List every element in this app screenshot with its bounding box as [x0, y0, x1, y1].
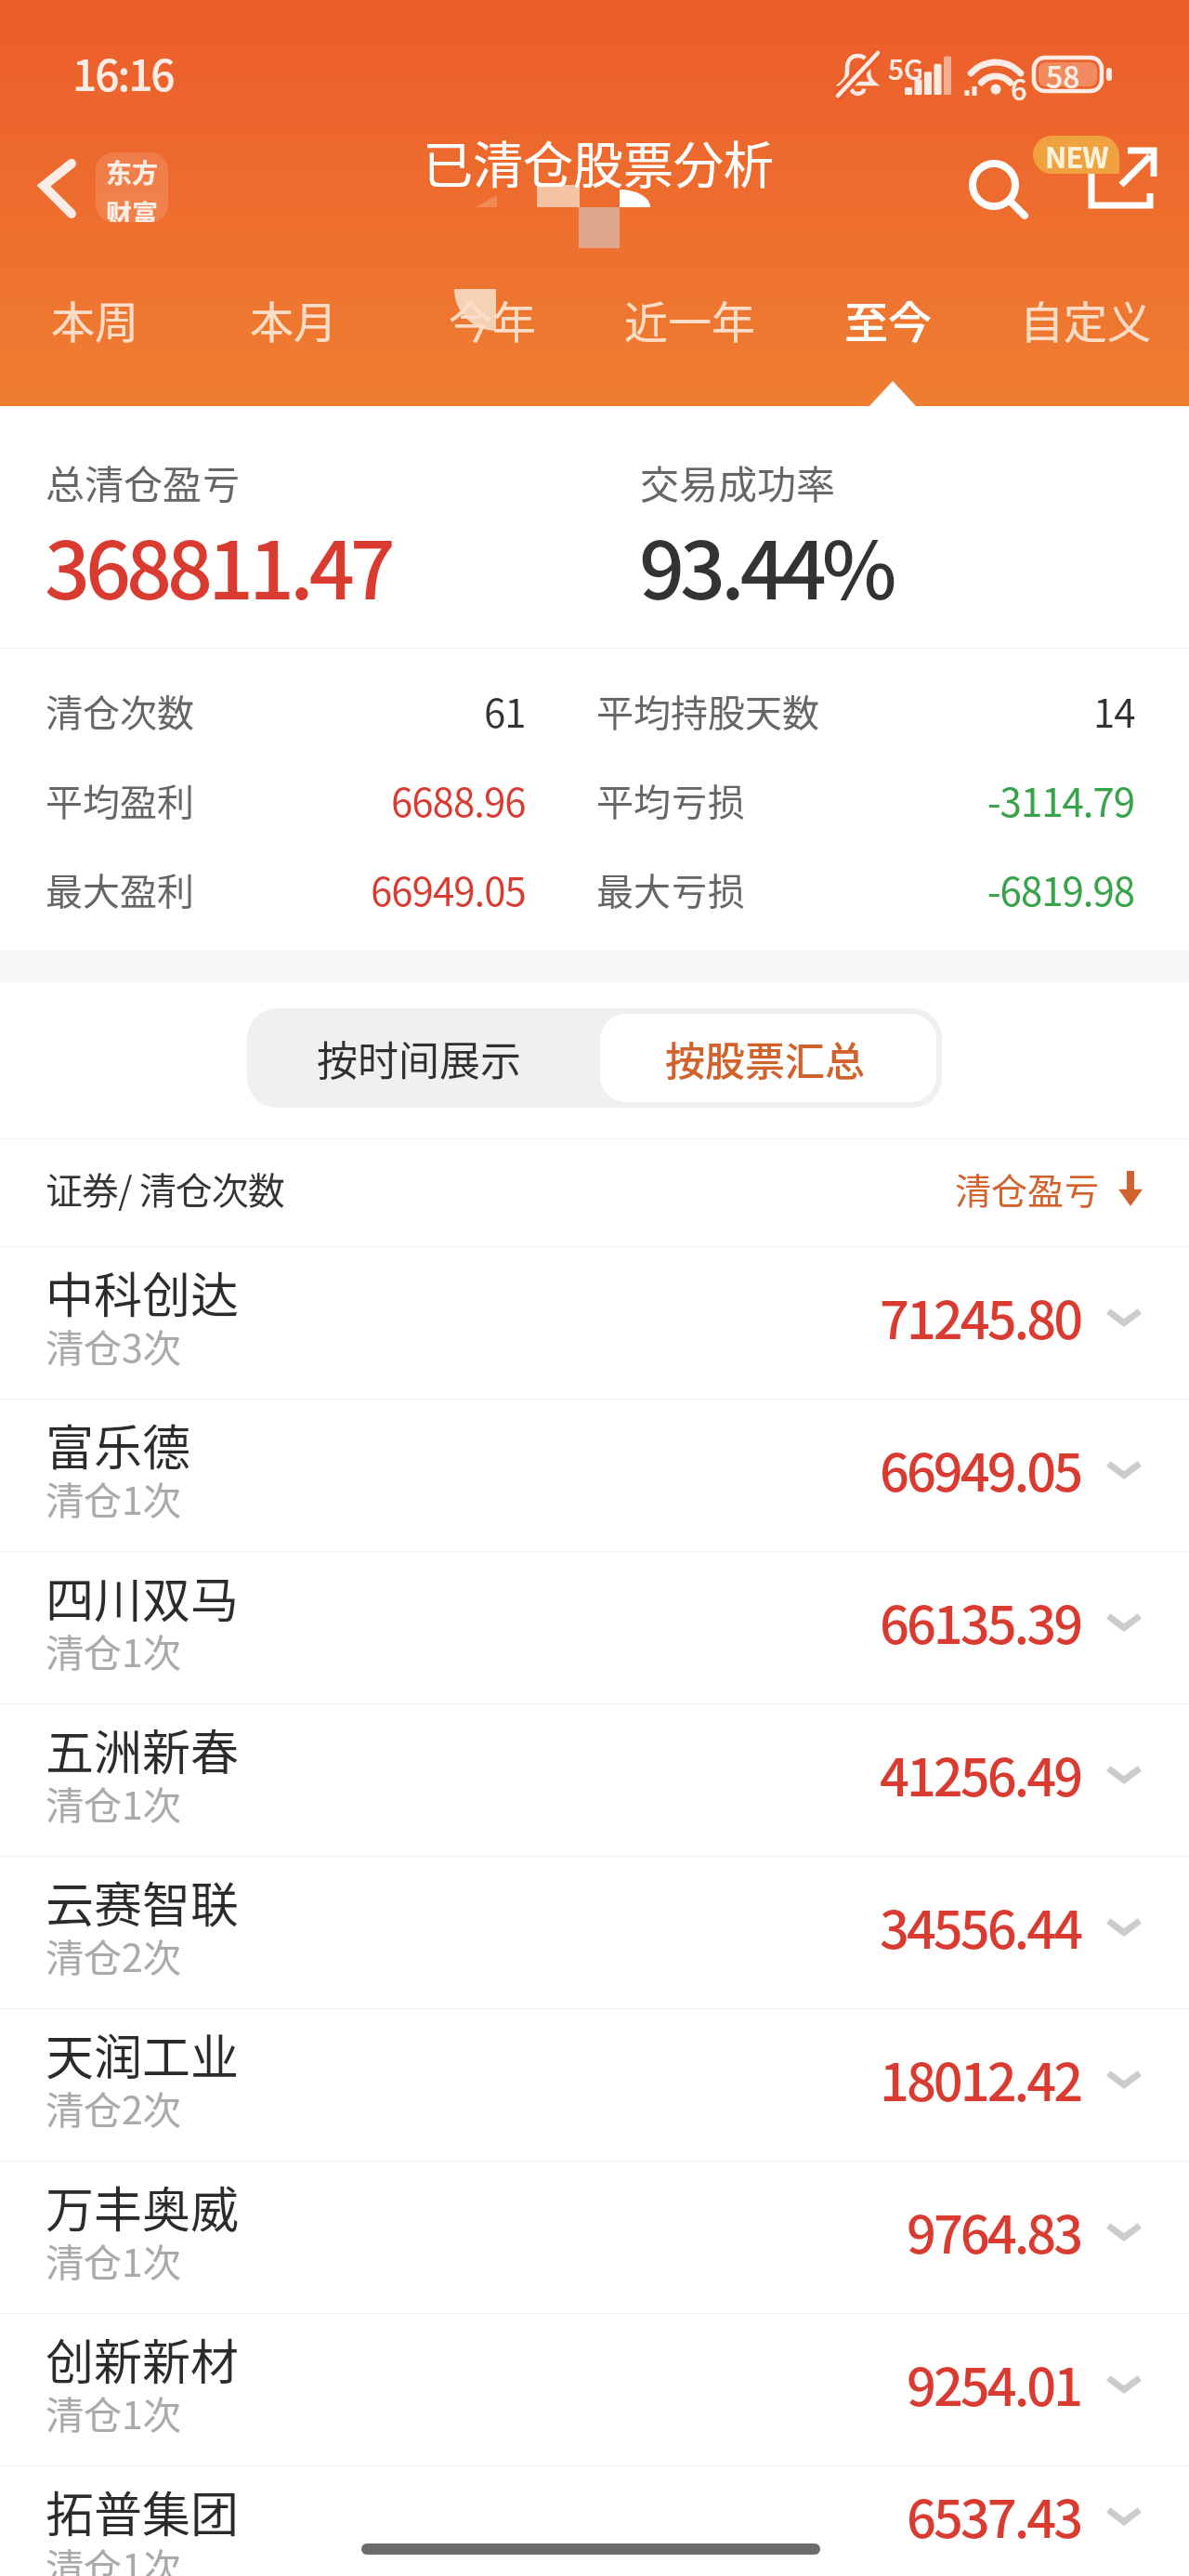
staticText: 近一年 [624, 287, 755, 350]
button[interactable]: 富乐德 [0, 1400, 1189, 1551]
staticText: 财富 [106, 194, 159, 222]
staticText: 已清仓股票分析 [423, 125, 774, 198]
staticText: 总清仓盈亏 [46, 453, 242, 510]
staticText: 6 [1011, 67, 1027, 109]
staticText: 58 [1046, 54, 1080, 97]
button[interactable]: Share [1083, 141, 1161, 219]
button[interactable]: 今年 [398, 269, 595, 372]
staticText: 五洲新春 [46, 1715, 240, 1784]
staticText: 平均持股天数 [596, 684, 819, 738]
button[interactable]: 云赛智联 [0, 1857, 1189, 2008]
staticText: 清仓1次 [46, 1775, 181, 1830]
staticText: 云赛智联 [46, 1867, 240, 1937]
staticText: 9254.01 [907, 2346, 1081, 2421]
staticText: 清仓次数 [46, 684, 194, 738]
staticText: 16:16 [72, 42, 174, 104]
staticText: 本周 [51, 287, 138, 350]
staticText: 按时间展示 [317, 1029, 521, 1088]
staticText: 41256.49 [880, 1736, 1081, 1811]
button[interactable]: 万丰奥威 [0, 2162, 1189, 2313]
staticText: 14 [1093, 682, 1135, 739]
staticText: 拓普集团 [46, 2477, 240, 2546]
staticText: 证券/ 清仓次数 [46, 1162, 284, 1216]
button[interactable]: 按股票汇总 [600, 1014, 936, 1102]
button[interactable]: 本周 [0, 269, 199, 372]
button[interactable]: 五洲新春 [0, 1704, 1189, 1856]
staticText: 东方 [106, 153, 159, 191]
staticText: 平均亏损 [596, 773, 745, 827]
staticText: 66135.39 [880, 1584, 1081, 1659]
staticText: 清仓2次 [46, 2080, 181, 2135]
button[interactable]: 东方 [96, 152, 168, 222]
staticText: 清仓1次 [46, 1623, 181, 1677]
staticText: 6688.96 [391, 771, 526, 828]
staticText: 四川双马 [46, 1562, 240, 1632]
button[interactable]: 天润工业 [0, 2009, 1189, 2161]
staticText: 按股票汇总 [665, 1030, 865, 1087]
button[interactable]: 近一年 [595, 269, 793, 372]
button[interactable]: 清仓盈亏 [955, 1163, 1143, 1215]
button[interactable]: Search [962, 153, 1029, 220]
staticText: 71245.80 [880, 1279, 1081, 1354]
staticText: -3114.79 [987, 771, 1135, 828]
staticText: 清仓1次 [46, 2537, 181, 2576]
staticText: 天润工业 [46, 2019, 240, 2089]
staticText: 最大亏损 [596, 862, 745, 916]
staticText: 至今 [844, 287, 932, 350]
button[interactable]: 创新新材 [0, 2314, 1189, 2465]
button[interactable]: 中科创达 [0, 1247, 1189, 1399]
staticText: 清仓盈亏 [955, 1163, 1101, 1215]
staticText: 平均盈利 [46, 773, 194, 827]
staticText: 368811.47 [45, 506, 391, 623]
button[interactable]: 至今 [793, 269, 991, 372]
staticText: 清仓1次 [46, 2232, 181, 2287]
button[interactable]: 自定义 [991, 269, 1189, 372]
button[interactable]: 拓普集团 [0, 2466, 1189, 2576]
staticText: 最大盈利 [46, 862, 194, 916]
staticText: 清仓2次 [46, 1927, 181, 1982]
staticText: 5G [888, 47, 924, 87]
staticText: 18012.42 [880, 2041, 1081, 2116]
staticText: 中科创达 [46, 1257, 240, 1327]
button[interactable]: 四川双马 [0, 1552, 1189, 1703]
staticText: 34556.44 [880, 1888, 1081, 1964]
staticText: 创新新材 [46, 2324, 240, 2394]
button[interactable]: 按时间展示 [247, 1008, 594, 1108]
staticText: 66949.05 [880, 1431, 1081, 1506]
staticText: 9764.83 [907, 2193, 1081, 2268]
staticText: 交易成功率 [640, 453, 836, 510]
staticText: 93.44% [639, 506, 893, 623]
staticText: 6537.43 [907, 2477, 1081, 2553]
staticText: 今年 [449, 287, 536, 350]
staticText: 自定义 [1020, 287, 1151, 350]
staticText: 富乐德 [46, 1410, 191, 1479]
staticText: 清仓1次 [46, 1470, 181, 1525]
staticText: 61 [484, 682, 526, 739]
staticText: 66949.05 [371, 861, 526, 917]
staticText: -6819.98 [987, 861, 1135, 917]
staticText: 清仓1次 [46, 2385, 181, 2439]
button[interactable]: Back [33, 154, 85, 206]
staticText: 清仓3次 [46, 1318, 181, 1373]
button[interactable]: 本月 [199, 269, 398, 372]
staticText: NEW [1045, 136, 1108, 173]
staticText: 本月 [250, 287, 337, 350]
staticText: 万丰奥威 [46, 2172, 240, 2241]
